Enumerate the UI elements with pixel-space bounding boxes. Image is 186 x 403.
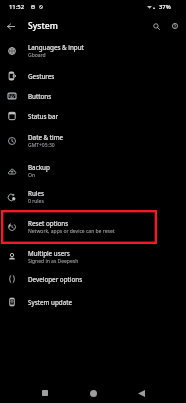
button[interactable]: Back: [129, 381, 153, 403]
staticText: Reset options: [28, 219, 69, 228]
staticText: Status bar: [28, 112, 59, 121]
button[interactable]: Home: [81, 381, 105, 403]
staticText: Multiple users: [28, 249, 70, 258]
staticText: Backup: [28, 163, 50, 172]
staticText: System update: [28, 298, 73, 307]
button[interactable]: Navigate up: [2, 17, 20, 35]
staticText: Developer options: [28, 275, 83, 284]
staticText: System: [28, 20, 58, 32]
button[interactable]: Status bar: [0, 106, 186, 126]
staticText: 11:52: [9, 3, 25, 11]
button[interactable]: System update: [0, 292, 186, 312]
button[interactable]: Help: [165, 16, 185, 36]
button[interactable]: Rules: [0, 182, 186, 211]
button[interactable]: Recent apps: [33, 381, 57, 403]
staticText: Rules: [28, 189, 45, 198]
staticText: Buttons: [28, 92, 52, 101]
staticText: 37%: [159, 3, 171, 11]
button[interactable]: Backup: [0, 156, 186, 185]
staticText: On: [28, 172, 35, 179]
button[interactable]: Multiple users: [0, 242, 186, 271]
staticText: Signed in as Deepesh: [28, 258, 79, 265]
staticText: Gboard: [28, 52, 46, 59]
button[interactable]: Languages & input: [0, 36, 186, 65]
staticText: 0 rules: [28, 198, 44, 205]
staticText: Languages & input: [28, 43, 84, 52]
button[interactable]: Reset options: [0, 212, 186, 241]
button[interactable]: Gestures: [0, 66, 186, 86]
staticText: GMT+05:30: [28, 142, 55, 149]
staticText: Network, apps or device can be reset: [28, 228, 115, 235]
button[interactable]: Search: [146, 16, 166, 36]
button[interactable]: Date & time: [0, 126, 186, 155]
button[interactable]: Buttons: [0, 86, 186, 106]
button[interactable]: Developer options: [0, 269, 186, 289]
staticText: Date & time: [28, 133, 64, 142]
staticText: Gestures: [28, 72, 55, 81]
